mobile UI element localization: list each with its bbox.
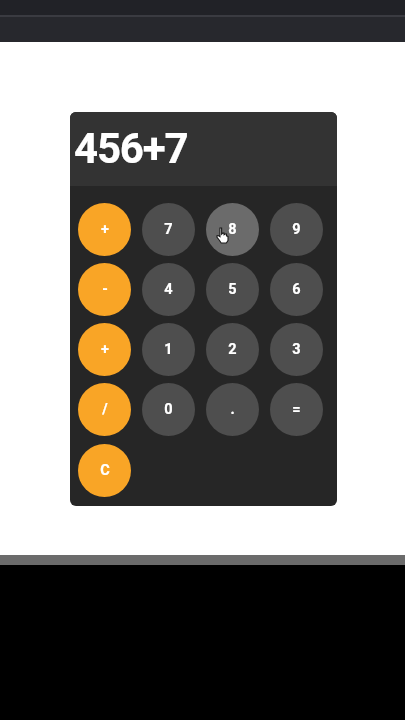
staticText: 1 — [164, 341, 173, 358]
staticText: 0 — [164, 401, 173, 418]
button[interactable]: 5 — [206, 263, 259, 316]
staticText: 6 — [292, 281, 301, 298]
staticText: / — [102, 401, 108, 418]
button[interactable]: Clear — [78, 444, 131, 497]
staticText: 4 — [164, 281, 173, 298]
staticText: 5 — [228, 281, 237, 298]
button[interactable]: 1 — [142, 323, 195, 376]
staticText: 3 — [292, 341, 301, 358]
button[interactable]: 6 — [270, 263, 323, 316]
button[interactable]: 0 — [142, 383, 195, 436]
staticText: 456+7 — [74, 124, 188, 173]
button[interactable]: 3 — [270, 323, 323, 376]
staticText: + — [101, 221, 109, 238]
button[interactable]: 7 — [142, 203, 195, 256]
staticText: + — [101, 341, 109, 358]
staticText: . — [230, 401, 235, 418]
button[interactable]: 9 — [270, 203, 323, 256]
staticText: 2 — [228, 341, 237, 358]
button[interactable]: Plus — [78, 203, 131, 256]
button[interactable]: 8 — [206, 203, 259, 256]
button[interactable]: 4 — [142, 263, 195, 316]
staticText: = — [292, 401, 301, 418]
button[interactable]: Equals — [270, 383, 323, 436]
button[interactable]: Plus — [78, 323, 131, 376]
staticText: C — [100, 462, 110, 479]
button[interactable]: Decimal point — [206, 383, 259, 436]
staticText: 7 — [164, 221, 173, 238]
button[interactable]: Minus — [78, 263, 131, 316]
button[interactable]: 2 — [206, 323, 259, 376]
staticText: - — [102, 281, 108, 298]
staticText: 8 — [228, 221, 237, 238]
button[interactable]: Divide — [78, 383, 131, 436]
staticText: 9 — [292, 221, 301, 238]
